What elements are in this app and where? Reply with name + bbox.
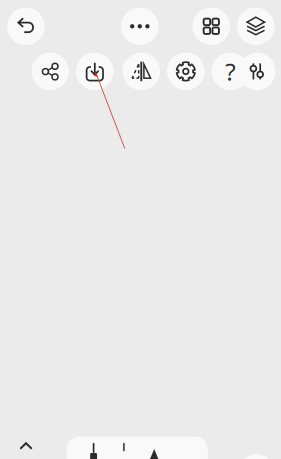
button[interactable]: Show tools [6, 433, 46, 459]
button[interactable]: Color [238, 454, 275, 459]
button[interactable]: Undo [7, 8, 45, 45]
staticText: ? [225, 55, 235, 87]
button[interactable]: Adjustments [238, 53, 276, 90]
button[interactable]: Help [212, 53, 249, 90]
button[interactable]: Pencil [118, 443, 130, 459]
button[interactable]: Marker [148, 443, 160, 459]
button[interactable]: Layers [237, 8, 275, 45]
button[interactable]: Share [31, 53, 69, 90]
button[interactable]: More [121, 8, 159, 45]
button[interactable]: Pen [88, 443, 100, 459]
button[interactable]: Save [76, 53, 113, 90]
button[interactable]: Settings [167, 53, 205, 90]
button[interactable]: Flip horizontally [123, 53, 160, 90]
button[interactable]: Pages [193, 8, 230, 45]
